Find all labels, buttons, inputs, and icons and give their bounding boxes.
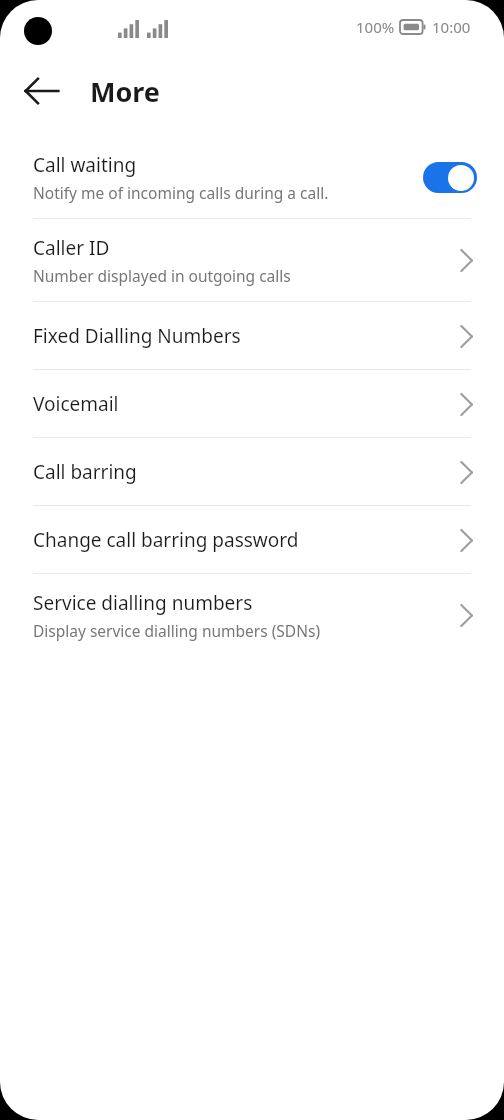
- button[interactable]: Back: [18, 67, 66, 115]
- staticText: Call barring: [33, 459, 445, 485]
- button[interactable]: Fixed Dialling Numbers: [0, 302, 504, 369]
- staticText: More: [90, 73, 160, 110]
- staticText: Service dialling numbers: [33, 590, 253, 616]
- button[interactable]: Service dialling numbers: [0, 574, 504, 656]
- staticText: Voicemail: [33, 391, 445, 417]
- button[interactable]: Change call barring password: [0, 506, 504, 573]
- button[interactable]: Call waiting: [0, 136, 504, 218]
- staticText: Display service dialling numbers (SDNs): [33, 620, 321, 641]
- staticText: Notify me of incoming calls during a cal…: [33, 182, 329, 203]
- button[interactable]: Caller ID: [0, 219, 504, 301]
- staticText: 100%: [356, 17, 395, 37]
- staticText: 10:00: [432, 17, 471, 37]
- button[interactable]: Call waiting toggle, on: [423, 162, 477, 193]
- button[interactable]: Call barring: [0, 438, 504, 505]
- staticText: Caller ID: [33, 235, 110, 261]
- staticText: Fixed Dialling Numbers: [33, 323, 445, 349]
- staticText: Change call barring password: [33, 527, 445, 553]
- button[interactable]: Voicemail: [0, 370, 504, 437]
- staticText: Call waiting: [33, 152, 137, 178]
- staticText: Number displayed in outgoing calls: [33, 265, 291, 286]
